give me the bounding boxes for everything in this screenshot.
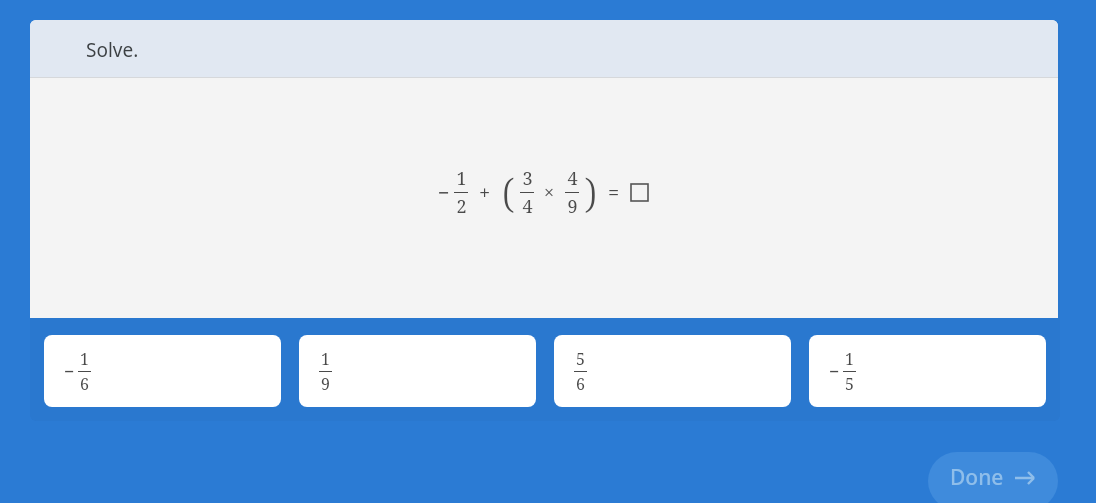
- button[interactable]: −: [809, 335, 1046, 407]
- button[interactable]: 5: [554, 335, 791, 407]
- button[interactable]: −: [44, 335, 281, 407]
- staticText: 6: [576, 373, 585, 395]
- staticText: =: [608, 179, 620, 206]
- staticText: 1: [321, 348, 330, 370]
- staticText: 6: [80, 373, 89, 395]
- staticText: 4: [567, 166, 578, 191]
- staticText: 3: [522, 166, 533, 191]
- staticText: Solve.: [86, 37, 139, 63]
- staticText: 4: [522, 194, 533, 219]
- staticText: 5: [845, 373, 854, 395]
- staticText: Done: [950, 463, 1004, 492]
- staticText: 5: [576, 348, 585, 370]
- staticText: (: [502, 165, 515, 219]
- staticText: 1: [845, 348, 854, 370]
- button[interactable]: 1: [299, 335, 536, 407]
- button[interactable]: Done: [928, 452, 1058, 503]
- staticText: ): [584, 165, 597, 219]
- staticText: 1: [456, 166, 467, 191]
- staticText: 9: [321, 373, 330, 395]
- staticText: −: [64, 359, 75, 384]
- staticText: 2: [456, 194, 467, 219]
- staticText: 1: [80, 348, 89, 370]
- staticText: +: [479, 179, 491, 206]
- staticText: −: [829, 359, 840, 384]
- staticText: ×: [544, 180, 555, 205]
- staticText: 9: [567, 194, 578, 219]
- staticText: −: [438, 179, 450, 206]
